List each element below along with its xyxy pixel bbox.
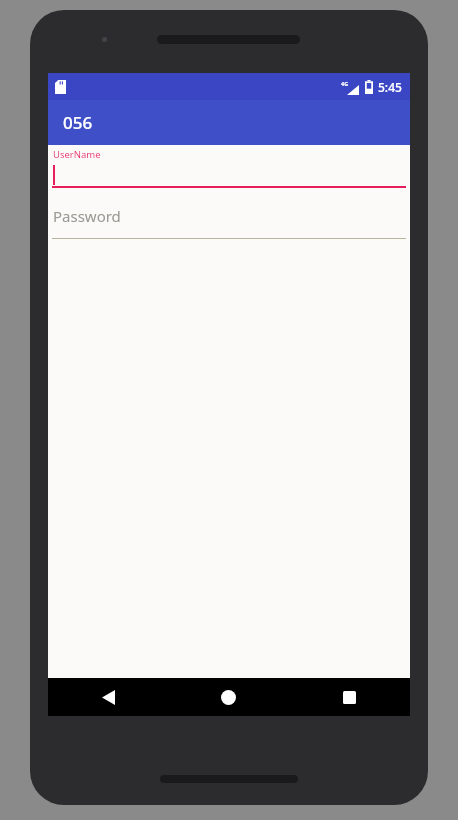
staticText: 056	[63, 111, 93, 134]
button[interactable]: Password	[48, 197, 410, 239]
staticText: UserName	[53, 148, 101, 161]
staticText: 5:45	[378, 79, 402, 95]
staticText: Password	[53, 206, 121, 226]
button[interactable]: Home	[168, 678, 289, 716]
button[interactable]: Back	[48, 678, 168, 716]
button[interactable]: Recent apps	[289, 678, 410, 716]
button[interactable]: UserName	[48, 145, 410, 191]
staticText: 4G	[341, 80, 349, 87]
